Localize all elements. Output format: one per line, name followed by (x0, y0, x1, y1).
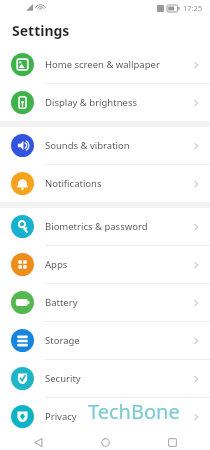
staticText: Apps (45, 258, 190, 271)
button[interactable]: Sounds & vibration (0, 127, 210, 164)
staticText: Biometrics & password (45, 220, 190, 233)
button[interactable]: Home (92, 435, 118, 450)
staticText: Battery (45, 296, 190, 309)
staticText: Privacy (45, 410, 190, 423)
staticText: Security (45, 372, 190, 385)
button[interactable]: Storage (0, 322, 210, 359)
button[interactable]: Battery (0, 284, 210, 321)
button[interactable]: Notifications (0, 165, 210, 202)
button[interactable]: Display & brightness (0, 84, 210, 121)
staticText: 17:25 (183, 3, 203, 13)
button[interactable]: Home screen & wallpaper (0, 46, 210, 83)
staticText: Storage (45, 334, 190, 347)
button[interactable]: Privacy (0, 398, 210, 435)
staticText: Sounds & vibration (45, 139, 190, 152)
staticText: TechBone (88, 398, 180, 425)
staticText: Settings (12, 21, 70, 40)
button[interactable]: Apps (0, 246, 210, 283)
button[interactable]: Recent apps (159, 435, 185, 450)
button[interactable]: Security (0, 360, 210, 397)
button[interactable]: Biometrics & password (0, 208, 210, 245)
staticText: Home screen & wallpaper (45, 58, 190, 71)
button[interactable]: Back (25, 435, 51, 450)
staticText: Display & brightness (45, 96, 190, 109)
staticText: Notifications (45, 177, 190, 190)
